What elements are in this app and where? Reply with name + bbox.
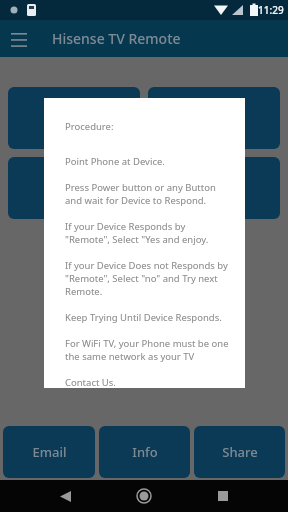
staticText: Procedure: [65,120,114,133]
button[interactable]: Home [131,483,157,509]
staticText: 11:29 [258,3,284,17]
staticText: Share [222,443,258,461]
staticText: For WiFi TV, your Phone must be one the … [65,337,231,363]
button[interactable]: Open navigation menu [0,20,37,57]
staticText: If your Device Does not Responds by "Rem… [65,259,231,298]
staticText: Email [32,443,67,461]
staticText: If your Device Responds by "Remote", Sel… [65,220,231,246]
staticText: Contact Us. [65,376,116,388]
button[interactable]: Share [194,426,285,478]
staticText: Hisense TV Remote [52,29,181,48]
button[interactable]: Info [99,426,190,478]
staticText: Press Power button or any Button and wai… [65,181,231,207]
button[interactable]: Remote option [148,157,280,219]
button[interactable]: Email [3,426,95,478]
staticText: Remote [188,179,241,198]
button[interactable]: Remote option [8,157,140,219]
button[interactable]: Remote option [8,87,140,149]
button[interactable]: Back [52,483,78,509]
button[interactable]: Remote option [148,87,280,149]
staticText: Keep Trying Until Device Responds. [65,311,222,324]
button[interactable]: Recent apps [210,483,236,509]
staticText: Info [132,443,158,461]
staticText: Point Phone at Device. [65,155,165,168]
